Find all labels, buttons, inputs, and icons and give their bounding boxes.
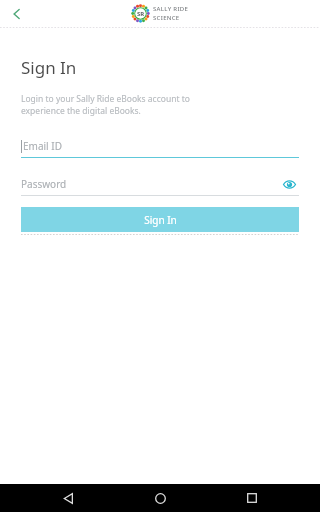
staticText: Email ID — [23, 139, 62, 153]
button[interactable]: Home — [148, 486, 172, 510]
staticText: SR — [137, 10, 145, 18]
button[interactable]: Recent apps — [240, 486, 264, 510]
button[interactable]: Back — [4, 1, 30, 27]
button[interactable]: Show password — [279, 174, 299, 194]
staticText: Password — [21, 177, 67, 191]
button[interactable]: Password — [21, 173, 299, 195]
staticText: SALLY RIDE — [153, 5, 189, 13]
staticText: Login to your Sally Ride eBooks account … — [21, 93, 190, 117]
staticText: Sign In — [21, 56, 77, 79]
button[interactable]: Sign In — [21, 207, 299, 232]
button[interactable]: Back — [56, 486, 80, 510]
staticText: SCIENCE — [153, 14, 180, 22]
staticText: Sign In — [144, 213, 177, 227]
button[interactable]: Email ID — [21, 135, 299, 157]
